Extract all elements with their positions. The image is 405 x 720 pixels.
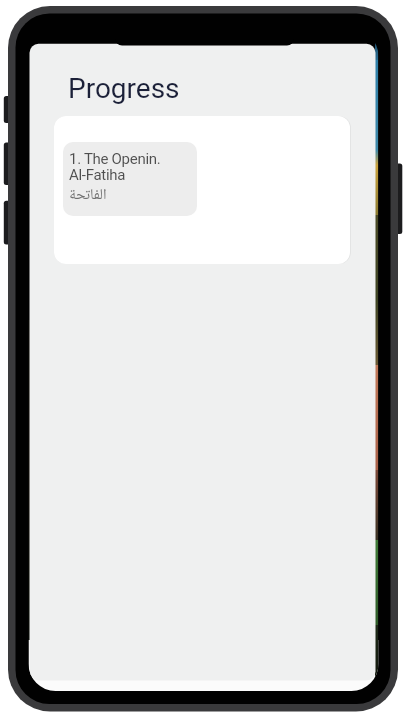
button[interactable]: 1. The Openin.: [63, 142, 197, 216]
staticText: الفاتحة: [69, 185, 107, 205]
staticText: Al-Fatiha: [69, 166, 126, 184]
button[interactable]: 1. The Openin.: [54, 116, 350, 264]
staticText: Progress: [68, 72, 180, 105]
staticText: 1. The Openin.: [69, 150, 161, 168]
